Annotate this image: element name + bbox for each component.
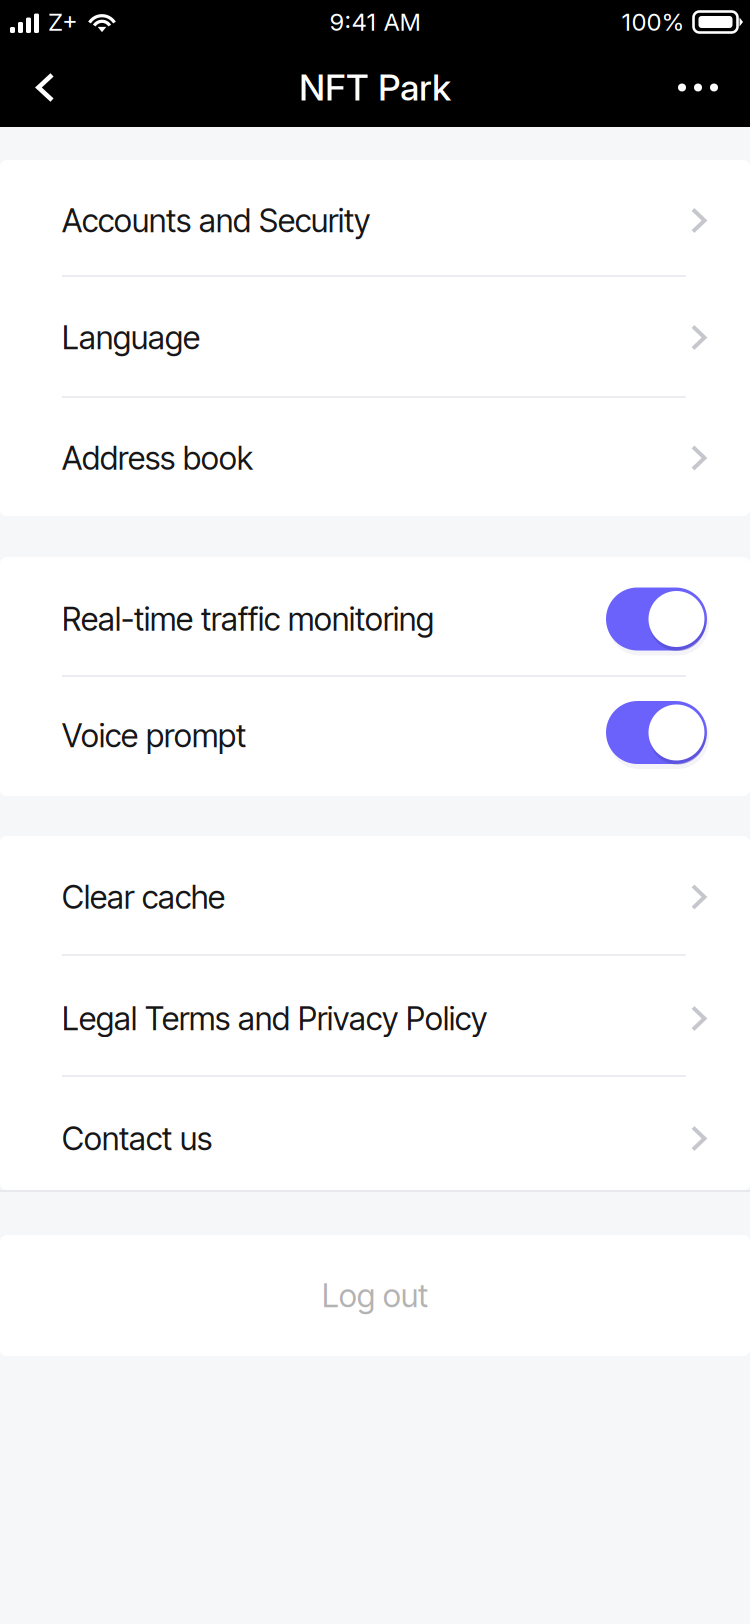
button[interactable]: Back <box>0 48 90 127</box>
button[interactable]: Address book <box>0 398 750 516</box>
staticText: Clear cache <box>62 878 225 916</box>
button[interactable]: Voice prompt <box>0 677 750 796</box>
staticText: NFT Park <box>299 66 451 109</box>
staticText: Language <box>62 318 200 357</box>
staticText: Real-time traffic monitoring <box>62 600 434 638</box>
staticText: 9:41 AM <box>329 7 420 36</box>
button[interactable]: Legal Terms and Privacy Policy <box>0 956 750 1075</box>
button[interactable]: Real-time traffic monitoring <box>0 557 750 675</box>
button[interactable]: Clear cache <box>0 834 750 954</box>
button[interactable]: Language <box>0 277 750 396</box>
button[interactable]: More options <box>646 48 750 127</box>
button[interactable]: Log out <box>0 1235 750 1356</box>
button[interactable]: Contact us <box>0 1077 750 1192</box>
staticText: Address book <box>62 439 253 477</box>
staticText: Accounts and Security <box>62 201 370 240</box>
staticText: Legal Terms and Privacy Policy <box>62 999 487 1038</box>
staticText: 100% <box>621 7 684 36</box>
staticText: Z+ <box>48 7 78 36</box>
staticText: Contact us <box>62 1119 212 1158</box>
staticText: Log out <box>322 1276 428 1315</box>
staticText: Voice prompt <box>62 716 246 755</box>
button[interactable]: Accounts and Security <box>0 160 750 275</box>
